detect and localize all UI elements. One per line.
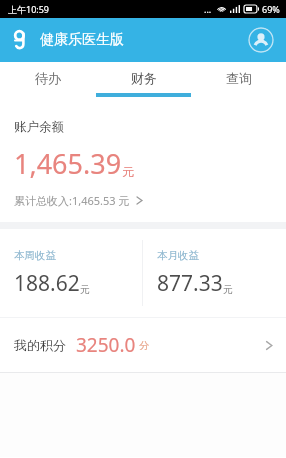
staticText: 账户余额: [14, 119, 64, 135]
staticText: ...: [204, 3, 212, 15]
staticText: 元: [223, 283, 233, 296]
staticText: 上午10:59: [8, 3, 50, 15]
staticText: 分: [139, 339, 149, 352]
button[interactable]: 财务: [96, 62, 191, 100]
staticText: 本周收益: [14, 249, 56, 262]
staticText: 3250.0: [76, 332, 136, 358]
staticText: 1,465.39: [14, 145, 122, 182]
button[interactable]: 待办: [0, 62, 96, 100]
button[interactable]: 本月收益: [143, 229, 286, 317]
staticText: 健康乐医生版: [40, 31, 124, 49]
staticText: 188.62: [14, 269, 80, 298]
button[interactable]: 本周收益: [0, 229, 142, 317]
staticText: 查询: [226, 70, 252, 86]
staticText: 待办: [35, 70, 61, 86]
button[interactable]: 查询: [191, 62, 286, 100]
staticText: 累计总收入:1,465.53 元: [14, 193, 130, 208]
button[interactable]: 累计总收入:1,465.53 元: [14, 193, 143, 208]
staticText: 元: [122, 164, 134, 179]
staticText: 本月收益: [157, 249, 199, 262]
button[interactable]: 我的积分: [0, 318, 286, 372]
staticText: 财务: [131, 70, 157, 86]
staticText: 69%: [262, 3, 280, 15]
staticText: 877.33: [157, 269, 223, 298]
staticText: 我的积分: [14, 337, 66, 353]
staticText: 元: [80, 283, 90, 296]
button[interactable]: Profile: [248, 27, 274, 53]
